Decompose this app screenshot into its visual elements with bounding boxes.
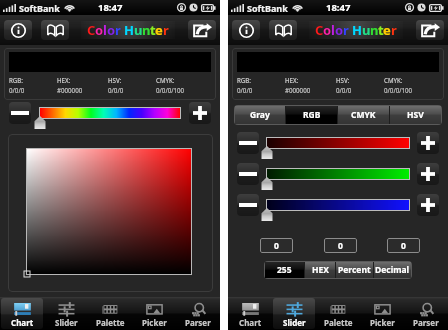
staticText: Palette [96,317,125,328]
staticText: HEX: [57,76,71,84]
staticText: RGB: [9,76,24,84]
button[interactable]: Parser [404,297,448,330]
staticText: n [370,21,378,39]
staticText: CMYK [351,109,376,121]
button[interactable]: Glossary [41,20,69,40]
staticText: CMYK: [384,76,403,84]
staticText: HEX: [285,76,299,84]
button[interactable]: Picker [360,297,404,330]
button[interactable]: Decrease [9,102,31,124]
staticText: Chart [239,317,262,328]
staticText: 0/0/0/100 [384,86,413,94]
staticText: Parser [185,317,211,328]
staticText: r [115,21,121,39]
staticText: Picker [370,317,395,328]
button[interactable]: 0 [324,238,357,253]
button[interactable]: 0 [260,238,293,253]
staticText: 0/0/0 [336,86,352,94]
staticText: Palette [324,317,353,328]
staticText: SoftBank [19,2,60,14]
staticText: 0/0/0/100 [156,86,185,94]
staticText: n [142,21,150,39]
button[interactable]: Slider [272,297,316,330]
button[interactable]: Glossary [269,20,297,40]
staticText: 0/0/0 [237,86,253,94]
button[interactable]: Chart [0,297,44,330]
staticText: C [315,21,323,39]
staticText: u [134,21,142,39]
staticText: H [124,21,134,39]
button[interactable]: Decrease [237,132,259,154]
button[interactable]: Chart [228,297,272,330]
button[interactable]: CMYK [338,106,389,124]
staticText: HSV: [336,76,350,84]
button[interactable]: Decrease [237,163,259,185]
staticText: Parser [413,317,439,328]
staticText: C [87,21,95,39]
staticText: 0/0/0 [108,86,124,94]
button[interactable]: Info [4,20,32,40]
staticText: 18:47 [326,1,351,14]
button[interactable]: HEX [305,262,335,278]
staticText: e [155,21,163,39]
button[interactable]: Palette [88,297,132,330]
staticText: #000000 [285,86,311,94]
button[interactable]: Gray [235,106,285,124]
staticText: o [335,21,343,39]
staticText: u [362,21,370,39]
staticText: H [352,21,362,39]
staticText: HEX [312,264,329,276]
button[interactable]: Info [232,20,260,40]
staticText: Percent [338,264,371,276]
staticText: Slider [55,317,78,328]
staticText: HSV [407,109,424,121]
staticText: 0 [401,240,406,252]
button[interactable]: Increase [189,102,211,124]
staticText: SoftBank [247,2,288,14]
staticText: Picker [142,317,167,328]
staticText: Decimal [375,264,410,276]
staticText: #000000 [57,86,83,94]
button[interactable]: Palette [316,297,360,330]
button[interactable]: Decrease [237,194,259,216]
staticText: RGB [303,109,321,121]
button[interactable]: Decimal [374,262,411,278]
button[interactable]: 255 [265,262,304,278]
staticText: Gray [250,109,270,121]
staticText: r [163,21,169,39]
staticText: Chart [11,317,34,328]
staticText: t [150,21,155,39]
button[interactable]: Parser [176,297,220,330]
staticText: l [103,21,107,39]
staticText: RGB: [237,76,252,84]
staticText: r [391,21,397,39]
button[interactable]: Picker [132,297,176,330]
staticText [121,21,124,39]
button[interactable]: Share [188,20,216,40]
staticText: Slider [283,317,306,328]
button[interactable]: Increase [417,132,439,154]
staticText: CMYK: [156,76,175,84]
staticText: 0 [338,240,343,252]
button[interactable]: Slider [44,297,88,330]
staticText: e [383,21,391,39]
staticText: 255 [277,264,292,276]
button[interactable]: Percent [336,262,373,278]
staticText: o [107,21,115,39]
staticText: 0 [274,240,279,252]
button[interactable]: Increase [417,194,439,216]
staticText: 0/0/0 [9,86,25,94]
staticText: r [343,21,349,39]
staticText: o [95,21,103,39]
button[interactable]: RGB [286,106,337,124]
button[interactable]: Increase [417,163,439,185]
button[interactable]: HSV [390,106,441,124]
staticText [349,21,352,39]
button[interactable]: Share [416,20,444,40]
staticText: l [331,21,335,39]
staticText: o [323,21,331,39]
staticText: 18:47 [98,1,123,14]
staticText: t [378,21,383,39]
button[interactable]: 0 [387,238,420,253]
staticText: HSV: [108,76,122,84]
